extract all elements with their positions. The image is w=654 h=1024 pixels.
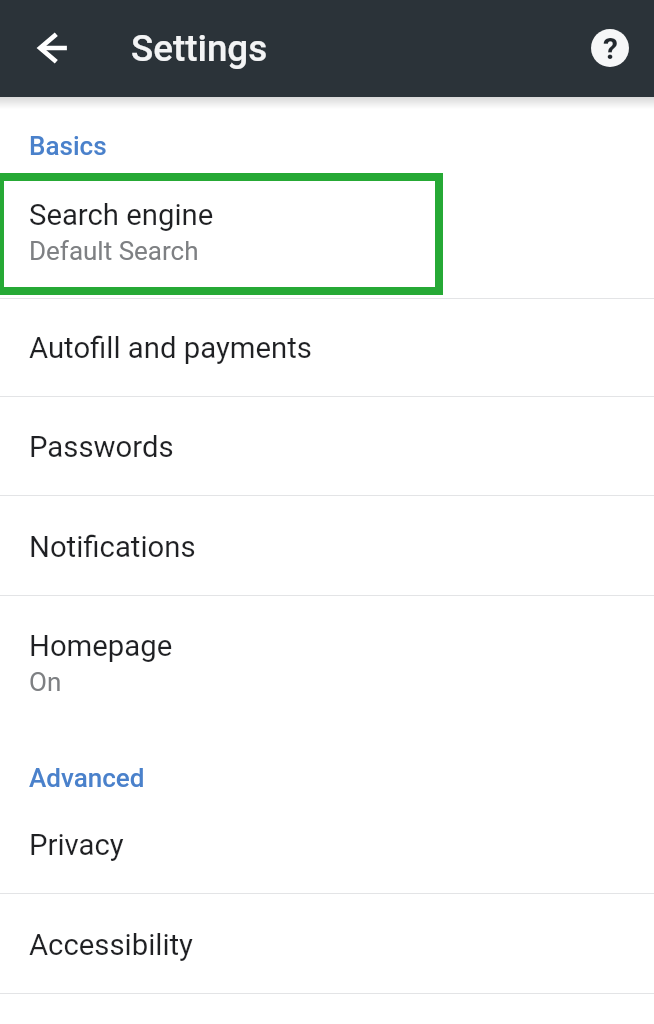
button[interactable]: Passwords (0, 397, 654, 495)
staticText: Basics (29, 131, 107, 161)
staticText: Privacy (29, 828, 124, 862)
button[interactable]: Accessibility (0, 894, 654, 993)
staticText: ? (603, 31, 618, 66)
button[interactable]: Homepage (0, 596, 654, 744)
staticText: Advanced (29, 763, 145, 793)
staticText: Search engine (29, 198, 214, 232)
staticText: Autofill and payments (29, 331, 312, 365)
staticText: On (29, 667, 62, 697)
button[interactable]: Back (21, 16, 85, 80)
staticText: Settings (131, 27, 268, 70)
staticText: Accessibility (29, 928, 193, 962)
button[interactable]: Help (578, 16, 642, 80)
button[interactable]: Notifications (0, 496, 654, 595)
staticText: Notifications (29, 530, 196, 564)
button[interactable]: Autofill and payments (0, 299, 654, 396)
staticText: Passwords (29, 430, 174, 464)
button[interactable]: Privacy (0, 795, 654, 893)
button[interactable]: Search engine (0, 173, 654, 298)
staticText: Default Search (29, 236, 199, 266)
staticText: Homepage (29, 629, 173, 663)
